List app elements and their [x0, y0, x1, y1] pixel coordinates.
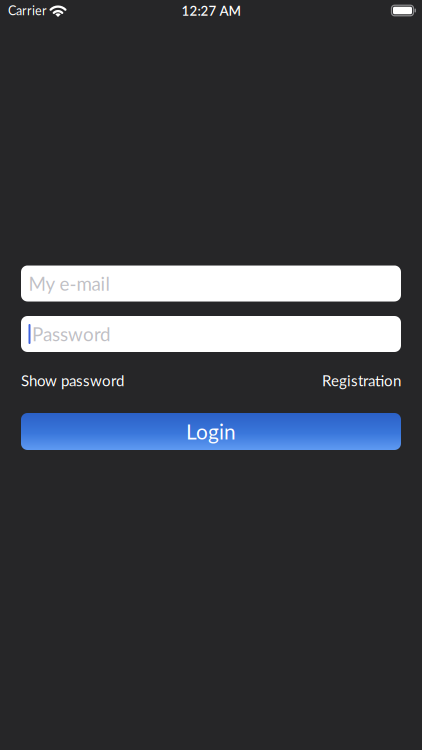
button[interactable]: Show password	[21, 371, 124, 390]
staticText: 12:27 AM	[181, 2, 240, 18]
staticText: Login	[186, 419, 236, 444]
staticText: Password	[32, 323, 111, 345]
button[interactable]: My e-mail	[21, 265, 401, 301]
button[interactable]: Registration	[322, 371, 401, 390]
staticText: Registration	[322, 371, 401, 390]
staticText: My e-mail	[28, 272, 109, 295]
button[interactable]: Login	[21, 413, 401, 450]
button[interactable]: Password	[21, 316, 401, 352]
staticText: Show password	[21, 371, 124, 390]
staticText: Carrier	[8, 3, 47, 18]
